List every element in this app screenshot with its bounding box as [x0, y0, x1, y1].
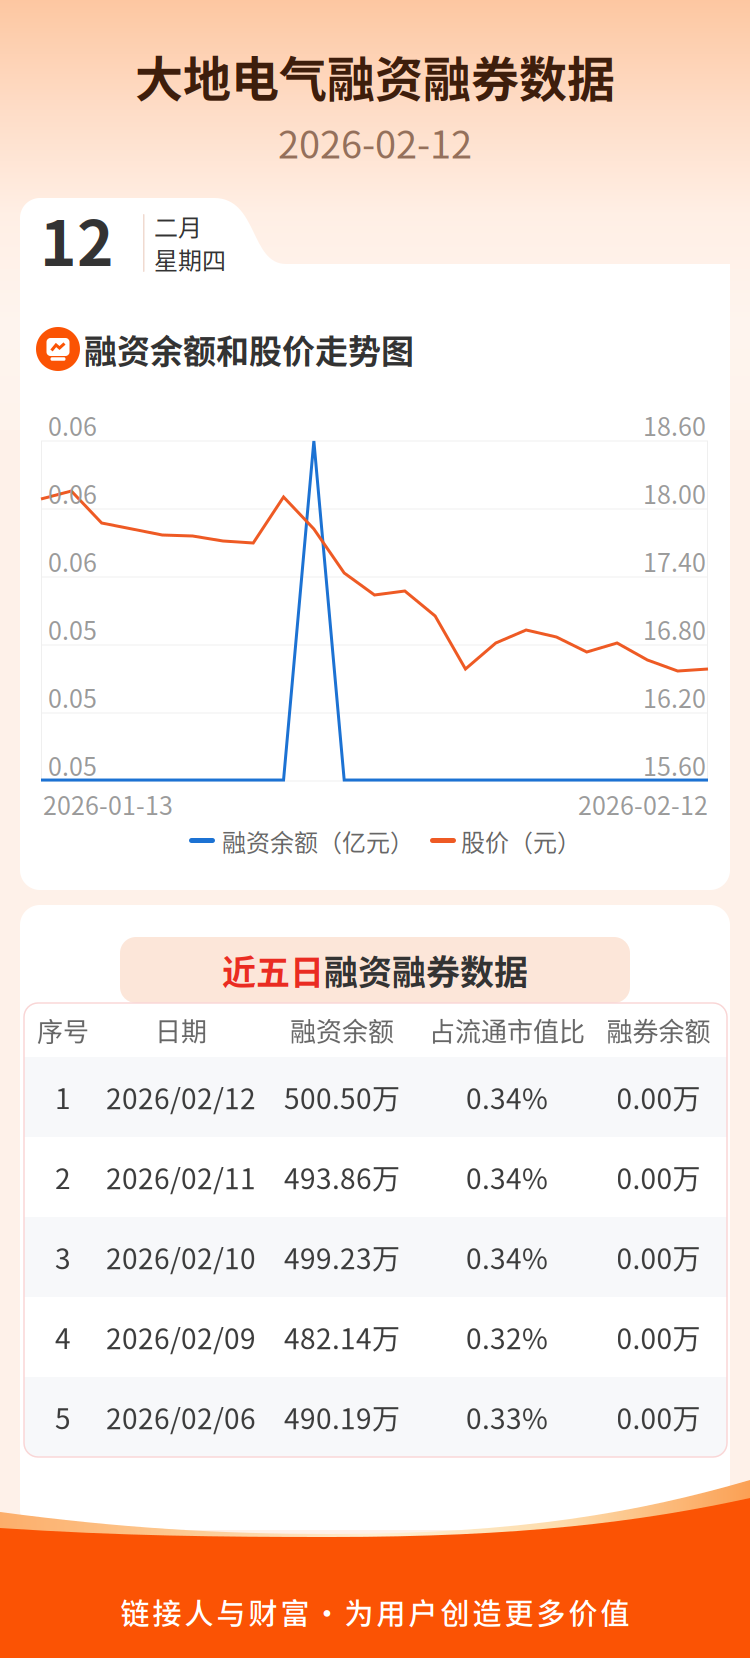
staticText: 0.06: [48, 407, 97, 443]
staticText: 0.06: [48, 475, 97, 511]
staticText: 融资余额: [290, 1011, 394, 1049]
staticText: 490.19万: [284, 1397, 400, 1437]
staticText: 占流通市值比: [429, 1011, 585, 1049]
staticText: 2026-02-12: [278, 114, 472, 169]
staticText: 0.34%: [466, 1157, 548, 1197]
staticText: 5: [55, 1397, 71, 1437]
staticText: 2026/02/06: [106, 1397, 256, 1437]
staticText: 0.00万: [616, 1237, 700, 1277]
staticText: 0.06: [48, 543, 97, 579]
staticText: 2026/02/10: [106, 1237, 256, 1277]
staticText: 16.80: [643, 611, 706, 647]
staticText: 0.00万: [616, 1077, 700, 1117]
staticText: 序号: [37, 1011, 89, 1049]
staticText: 2: [55, 1157, 71, 1197]
staticText: 493.86万: [284, 1157, 400, 1197]
staticText: 近五日: [222, 945, 324, 995]
staticText: 0.05: [48, 747, 97, 783]
staticText: 15.60: [643, 747, 706, 783]
staticText: 0.00万: [616, 1157, 700, 1197]
staticText: 499.23万: [284, 1237, 400, 1277]
staticText: 12: [40, 194, 114, 284]
staticText: 0.00万: [616, 1317, 700, 1357]
staticText: 0.33%: [466, 1397, 548, 1437]
staticText: 0.05: [48, 679, 97, 715]
staticText: 18.00: [643, 475, 706, 511]
staticText: 2026/02/12: [106, 1077, 256, 1117]
staticText: 500.50万: [284, 1077, 400, 1117]
staticText: 0.34%: [466, 1077, 548, 1117]
staticText: 1: [55, 1077, 71, 1117]
staticText: 2026/02/11: [106, 1157, 256, 1197]
staticText: 二月: [154, 209, 202, 243]
staticText: 股价（元）: [461, 824, 581, 858]
staticText: 3: [55, 1237, 71, 1277]
staticText: 2026-02-12: [578, 786, 708, 822]
staticText: 日期: [155, 1011, 207, 1049]
staticText: 18.60: [643, 407, 706, 443]
staticText: 融资余额（亿元）: [222, 824, 414, 858]
staticText: 2026/02/09: [106, 1317, 256, 1357]
staticText: 融券余额: [606, 1011, 710, 1049]
staticText: 16.20: [643, 679, 706, 715]
staticText: 482.14万: [284, 1317, 400, 1357]
staticText: 星期四: [154, 242, 226, 276]
staticText: 17.40: [643, 543, 706, 579]
staticText: 链接人与财富·为用户创造更多价值: [120, 1591, 629, 1633]
staticText: 融资融券数据: [324, 945, 528, 995]
staticText: 0.34%: [466, 1237, 548, 1277]
staticText: 0.05: [48, 611, 97, 647]
staticText: 4: [55, 1317, 71, 1357]
staticText: 2026-01-13: [43, 786, 173, 822]
staticText: 0.32%: [466, 1317, 548, 1357]
staticText: 大地电气融资融券数据: [135, 41, 615, 110]
staticText: 融资余额和股价走势图: [84, 325, 414, 373]
staticText: 0.00万: [616, 1397, 700, 1437]
